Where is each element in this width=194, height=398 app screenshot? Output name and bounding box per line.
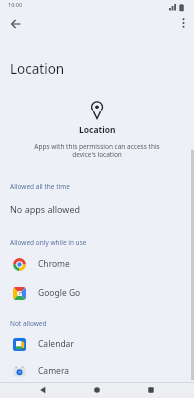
staticText: Allowed all the time	[10, 182, 70, 191]
staticText: Google Go	[38, 287, 81, 299]
staticText: G	[17, 289, 23, 299]
button[interactable]: No apps allowed	[0, 198, 194, 220]
button[interactable]: Calendar	[0, 330, 194, 358]
button[interactable]: G	[0, 279, 194, 307]
button[interactable]	[144, 383, 158, 397]
staticText: Apps with this permission can access thi…	[34, 142, 160, 159]
button[interactable]	[174, 14, 192, 32]
button[interactable]: Camera	[0, 357, 194, 385]
staticText: Not allowed	[10, 319, 47, 328]
staticText: 10:00	[8, 1, 23, 8]
button[interactable]: Chrome	[0, 250, 194, 278]
staticText: No apps allowed	[10, 203, 81, 215]
staticText: Allowed only while in use	[10, 238, 87, 247]
staticText: Location	[79, 124, 116, 136]
button[interactable]	[90, 383, 104, 397]
button[interactable]	[36, 383, 50, 397]
staticText: Calendar	[38, 338, 74, 350]
staticText: Camera	[38, 365, 69, 377]
staticText: Chrome	[38, 258, 70, 270]
staticText: Location	[10, 60, 65, 78]
button[interactable]	[6, 14, 26, 34]
